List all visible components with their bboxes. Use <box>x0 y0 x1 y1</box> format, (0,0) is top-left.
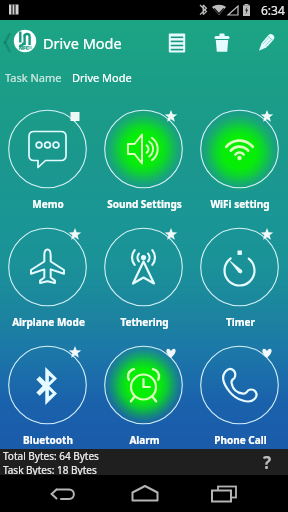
staticText: Bluetooth <box>23 433 73 447</box>
staticText: 6:34 <box>261 2 285 18</box>
staticText: Sound Settings <box>107 197 182 211</box>
staticText: Drive Mode <box>72 70 132 85</box>
staticText: Tethering <box>120 315 169 329</box>
button[interactable]: Recent apps <box>189 475 259 512</box>
button[interactable]: Phone Call <box>192 326 288 444</box>
button[interactable]: Alarm <box>96 326 192 444</box>
button[interactable]: Notes <box>153 20 200 65</box>
staticText: ? <box>263 451 272 474</box>
staticText: WiFi setting <box>210 197 270 211</box>
staticText: Drive Mode <box>43 33 122 53</box>
button[interactable]: Edit <box>243 20 288 65</box>
button[interactable]: Help <box>246 449 288 475</box>
button[interactable]: Bluetooth <box>0 326 96 444</box>
button[interactable]: Home <box>100 475 189 512</box>
staticText: Timer <box>226 315 255 329</box>
button[interactable]: Sound Settings <box>96 90 192 208</box>
staticText: Airplane Mode <box>12 315 85 329</box>
staticText: Task Name <box>5 70 62 85</box>
button[interactable]: Timer <box>192 208 288 326</box>
staticText: Alarm <box>129 433 160 447</box>
button[interactable]: Tethering <box>96 208 192 326</box>
button[interactable]: Delete <box>200 20 243 65</box>
button[interactable]: Memo <box>0 90 96 208</box>
staticText: Total Bytes: 64 Bytes <box>3 449 99 463</box>
button[interactable]: WiFi setting <box>192 90 288 208</box>
staticText: Task Bytes: 18 Bytes <box>3 463 97 475</box>
staticText: NFC <box>19 45 30 52</box>
button[interactable]: Navigate up <box>0 20 42 65</box>
staticText: Phone Call <box>214 433 267 447</box>
button[interactable]: Airplane Mode <box>0 208 96 326</box>
staticText: Memo <box>32 197 64 211</box>
button[interactable]: Back <box>28 475 100 512</box>
